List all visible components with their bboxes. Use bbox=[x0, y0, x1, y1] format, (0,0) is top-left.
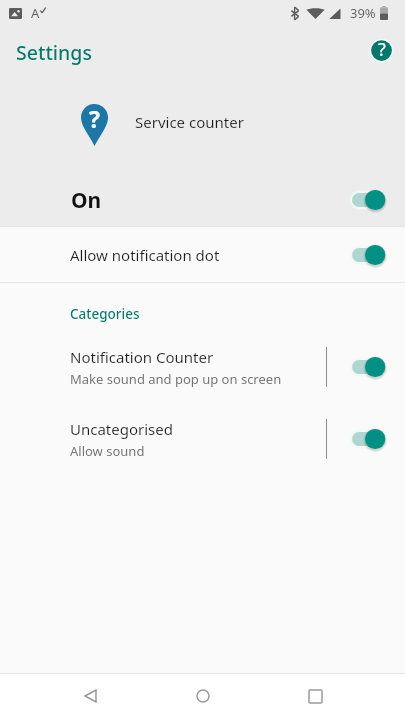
staticText: Categories bbox=[70, 305, 140, 323]
staticText: ? bbox=[89, 103, 100, 134]
staticText: 39% bbox=[350, 4, 376, 22]
staticText: Make sound and pop up on screen bbox=[70, 370, 282, 388]
button[interactable]: Recents bbox=[293, 674, 337, 718]
staticText: A bbox=[31, 4, 40, 22]
button[interactable]: On bbox=[0, 177, 405, 223]
button[interactable]: Toggle bbox=[352, 427, 386, 451]
staticText: On bbox=[71, 186, 102, 215]
button[interactable]: Allow notification dot bbox=[0, 228, 405, 281]
button[interactable]: Toggle bbox=[352, 355, 386, 379]
button[interactable]: Back bbox=[68, 674, 112, 718]
staticText: Notification Counter bbox=[70, 347, 214, 367]
staticText: Uncategorised bbox=[70, 419, 173, 439]
staticText: Service counter bbox=[135, 112, 244, 132]
button[interactable]: Toggle bbox=[352, 188, 386, 212]
button[interactable]: Help bbox=[369, 38, 394, 63]
staticText: Allow notification dot bbox=[70, 245, 220, 265]
staticText: Settings bbox=[16, 39, 92, 66]
button[interactable]: Home bbox=[181, 674, 225, 718]
staticText: Allow sound bbox=[70, 442, 145, 460]
staticText: ? bbox=[378, 38, 386, 62]
button[interactable]: Toggle bbox=[352, 243, 386, 267]
button[interactable]: Uncategorised bbox=[0, 407, 405, 471]
button[interactable]: Notification Counter bbox=[0, 335, 405, 399]
